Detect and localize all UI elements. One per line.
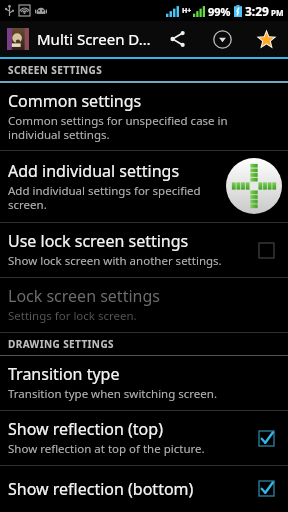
staticText: Show lock screen with another settings. <box>8 253 222 269</box>
staticText: SCREEN SETTINGS <box>8 63 103 77</box>
button[interactable]: Show reflection (bottom) <box>0 466 288 512</box>
staticText: Transition type <box>8 363 120 385</box>
button[interactable]: Show reflection (top) <box>0 411 288 465</box>
staticText: Add individual settings <box>8 160 180 182</box>
staticText: Lock screen settings <box>8 285 160 307</box>
button[interactable]: Unchecked <box>250 234 282 266</box>
staticText: Transition type when switching screen. <box>8 386 217 402</box>
staticText: H+ <box>182 6 192 16</box>
button[interactable]: Common settings <box>0 83 288 150</box>
staticText: DRAWING SETTINGS <box>8 337 114 351</box>
button[interactable]: Checked <box>250 473 282 504</box>
button[interactable]: Share <box>156 21 200 57</box>
staticText: Common settings <box>8 90 142 112</box>
button[interactable]: Add individual settings <box>0 151 288 222</box>
staticText: Multi Screen D… <box>37 29 151 49</box>
staticText: Add individual settings for specified sc… <box>8 183 220 212</box>
button[interactable]: Checked <box>250 422 282 454</box>
staticText: Show reflection at top of the picture. <box>8 441 205 457</box>
staticText: Show reflection (bottom) <box>8 478 194 500</box>
staticText: Use lock screen settings <box>8 230 189 252</box>
staticText: Common settings for unspecified case in … <box>8 113 282 142</box>
button[interactable]: Multi Screen D… <box>0 28 156 50</box>
staticText: 99% <box>208 4 231 19</box>
button[interactable]: Transition type <box>0 356 288 410</box>
staticText: 3:29 <box>245 3 269 19</box>
staticText: PM <box>271 7 284 18</box>
staticText: Show reflection (top) <box>8 418 163 440</box>
staticText: Settings for lock screen. <box>8 308 137 324</box>
button[interactable]: Use lock screen settings <box>0 223 288 277</box>
button[interactable]: Show more options <box>200 21 244 57</box>
button[interactable]: Favorite <box>244 21 288 57</box>
button: Lock screen settings <box>0 278 288 332</box>
